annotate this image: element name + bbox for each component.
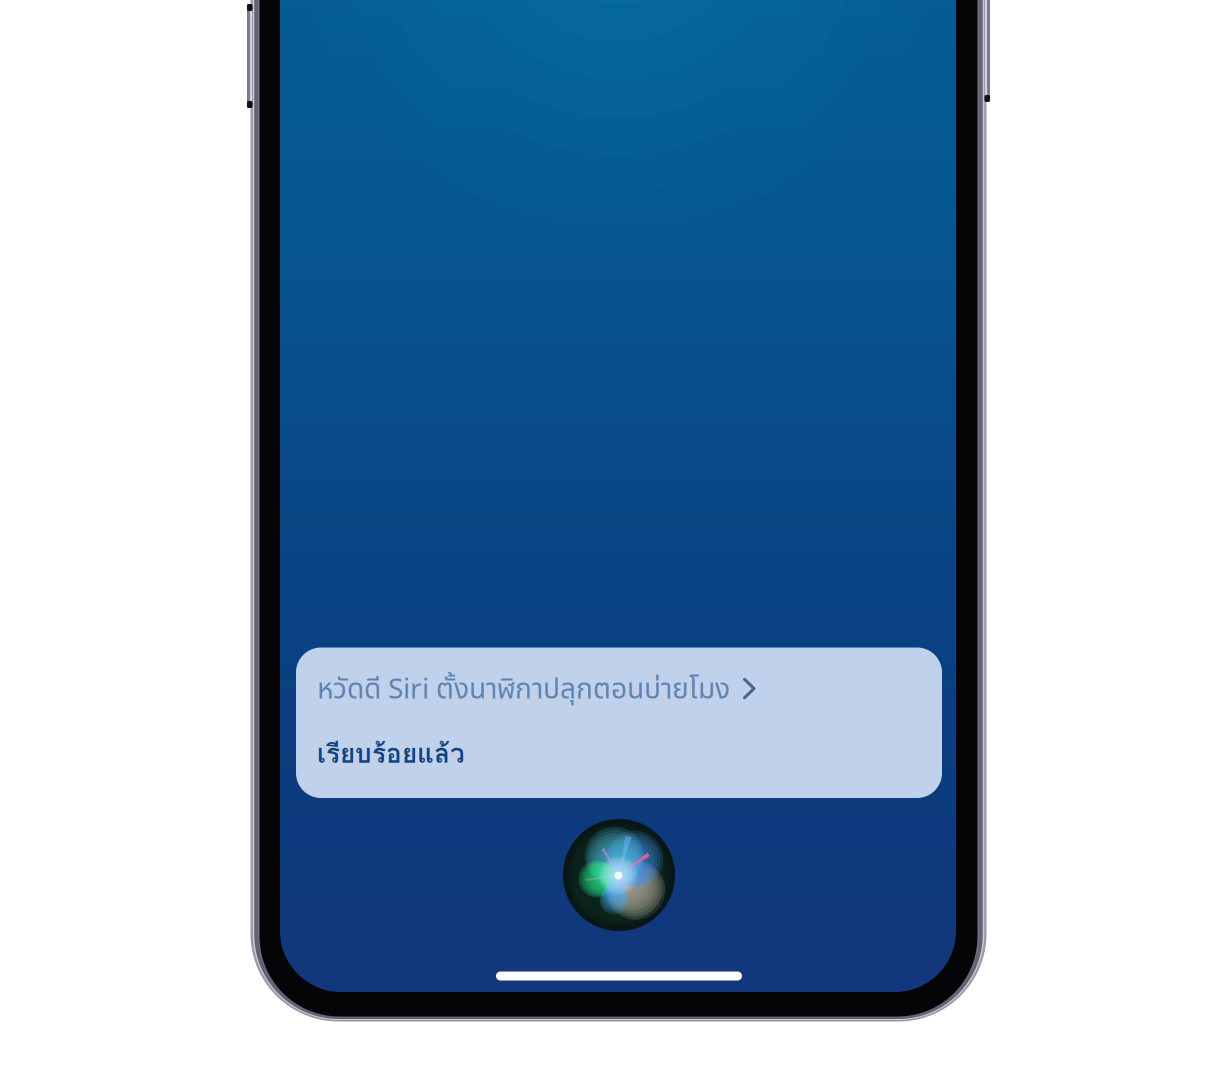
staticText: เรียบร้อยแล้ว <box>317 733 465 774</box>
button[interactable]: Volume up <box>247 4 252 108</box>
button[interactable]: Side button <box>984 0 990 102</box>
button[interactable]: หวัดดี Siri ตั้งนาฬิกาปลุกตอนบ่ายโมง <box>296 661 942 719</box>
staticText: หวัดดี Siri ตั้งนาฬิกาปลุกตอนบ่ายโมง <box>317 669 730 711</box>
